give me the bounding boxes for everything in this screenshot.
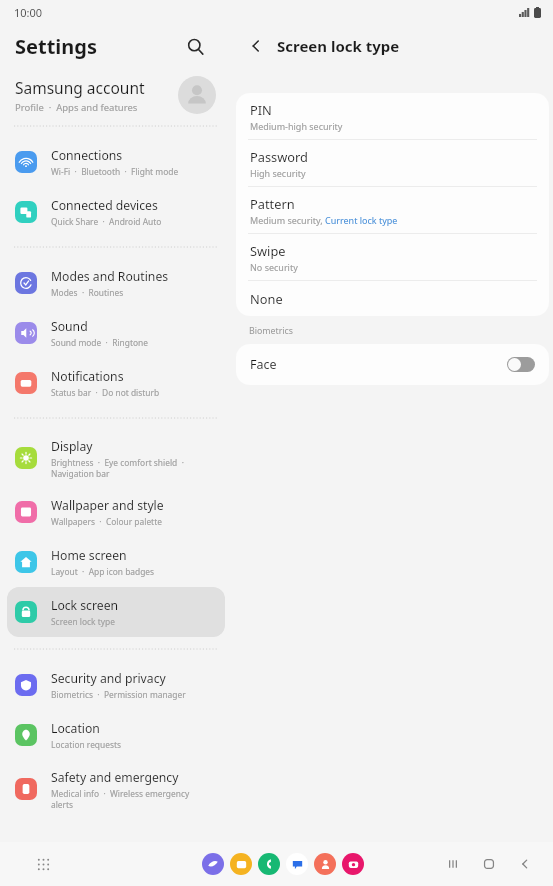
staticText: High security xyxy=(250,167,306,179)
button[interactable]: Swipe xyxy=(236,234,549,280)
button[interactable]: camera xyxy=(342,853,364,875)
staticText: Connections xyxy=(51,147,123,164)
button[interactable]: Back xyxy=(511,850,539,878)
button[interactable]: Sound xyxy=(7,308,225,358)
button[interactable]: Password xyxy=(236,140,549,186)
button[interactable]: messages xyxy=(286,853,308,875)
button[interactable]: Safety and emergency xyxy=(7,760,225,818)
staticText: Medium-high security xyxy=(250,120,343,132)
staticText: Connected devices xyxy=(51,197,158,214)
button[interactable]: files xyxy=(230,853,252,875)
staticText: Pattern xyxy=(250,195,295,212)
staticText: Display xyxy=(51,438,93,455)
staticText: Modes · Routines xyxy=(51,287,124,298)
staticText: Medical info · Wireless emergency xyxy=(51,788,190,799)
staticText: Wallpaper and style xyxy=(51,497,164,514)
other: Face unlock toggle xyxy=(507,357,535,372)
button[interactable]: Security and privacy xyxy=(7,660,225,710)
staticText: Security and privacy xyxy=(51,670,166,687)
staticText: None xyxy=(250,290,283,307)
staticText: Biometrics xyxy=(249,325,294,337)
button[interactable]: Back xyxy=(242,32,270,60)
staticText: Status bar · Do not disturb xyxy=(51,387,160,398)
staticText: Sound mode · Ringtone xyxy=(51,337,148,348)
staticText: Profile · Apps and features xyxy=(15,101,138,114)
button[interactable]: Face xyxy=(236,344,549,385)
button[interactable]: Connections xyxy=(7,137,225,187)
button[interactable]: PIN xyxy=(236,93,549,139)
button[interactable]: Home xyxy=(475,850,503,878)
staticText: Settings xyxy=(15,33,97,60)
button[interactable]: Lock screen xyxy=(7,587,225,637)
staticText: Password xyxy=(250,148,308,165)
button[interactable]: internet xyxy=(202,853,224,875)
staticText: Location xyxy=(51,720,100,737)
staticText: Safety and emergency xyxy=(51,769,179,786)
button[interactable]: Modes and Routines xyxy=(7,258,225,308)
staticText: Brightness · Eye comfort shield · xyxy=(51,457,184,468)
staticText: Current lock type xyxy=(325,214,398,226)
button[interactable]: Location xyxy=(7,710,225,760)
staticText: Samsung account xyxy=(15,77,145,98)
staticText: No security xyxy=(250,261,298,273)
button[interactable]: Recent apps xyxy=(439,850,467,878)
button[interactable]: Display xyxy=(7,429,225,487)
staticText: Layout · App icon badges xyxy=(51,566,155,577)
staticText: Wallpapers · Colour palette xyxy=(51,516,162,527)
staticText: Face xyxy=(250,356,507,373)
staticText: Wi-Fi · Bluetooth · Flight mode xyxy=(51,166,179,177)
button[interactable]: Search xyxy=(180,31,210,61)
staticText: Screen lock type xyxy=(277,36,400,56)
staticText: Lock screen xyxy=(51,597,119,614)
staticText: Location requests xyxy=(51,739,122,750)
staticText: Screen lock type xyxy=(51,616,115,627)
staticText: Modes and Routines xyxy=(51,268,169,285)
staticText: Sound xyxy=(51,318,88,335)
staticText: Biometrics · Permission manager xyxy=(51,689,186,700)
staticText: alerts xyxy=(51,799,74,810)
staticText: Home screen xyxy=(51,547,127,564)
button[interactable]: Apps xyxy=(30,851,56,877)
staticText: 10:00 xyxy=(14,5,43,20)
button[interactable]: Wallpaper and style xyxy=(7,487,225,537)
button[interactable]: Home screen xyxy=(7,537,225,587)
staticText: PIN xyxy=(250,101,272,118)
staticText: Swipe xyxy=(250,242,286,259)
staticText: Navigation bar xyxy=(51,468,110,479)
staticText: Quick Share · Android Auto xyxy=(51,216,162,227)
button[interactable]: Notifications xyxy=(7,358,225,408)
button[interactable]: Connected devices xyxy=(7,187,225,237)
button[interactable]: contacts xyxy=(314,853,336,875)
button[interactable]: None xyxy=(236,281,549,316)
button[interactable]: Pattern xyxy=(236,187,549,233)
button[interactable]: phone xyxy=(258,853,280,875)
staticText: Medium security, xyxy=(250,214,325,226)
staticText: Notifications xyxy=(51,368,124,385)
button[interactable]: Samsung account xyxy=(0,67,232,123)
